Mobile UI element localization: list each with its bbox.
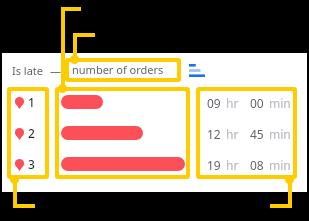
staticText: 19 xyxy=(207,157,221,173)
staticText: — xyxy=(50,63,61,78)
staticText: 2 xyxy=(28,125,35,141)
staticText: number of orders xyxy=(72,62,164,77)
staticText: 3 xyxy=(28,156,35,172)
staticText: hr xyxy=(226,157,239,173)
staticText: min xyxy=(269,126,291,142)
staticText: hr xyxy=(226,95,239,111)
staticText: min xyxy=(269,95,291,111)
staticText: 12 xyxy=(207,126,221,142)
staticText: 08 xyxy=(250,157,264,173)
staticText: 1 xyxy=(28,94,35,110)
staticText: 45 xyxy=(250,126,264,142)
button[interactable]: Sort xyxy=(186,60,208,80)
staticText: 09 xyxy=(207,95,221,111)
staticText: hr xyxy=(226,126,239,142)
staticText: min xyxy=(269,157,291,173)
staticText: 00 xyxy=(250,95,264,111)
staticText: Is late xyxy=(12,63,44,78)
button[interactable]: Is late xyxy=(12,60,72,80)
